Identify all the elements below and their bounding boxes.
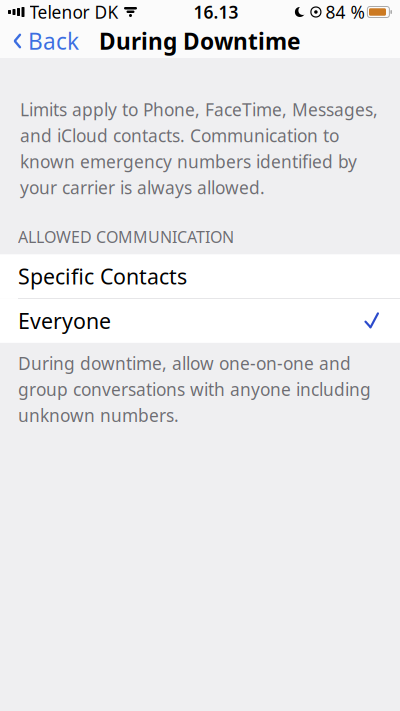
staticText: 84 % [325,0,364,23]
staticText: During Downtime [99,26,301,56]
staticText: Back [28,26,79,56]
staticText: 16.13 [193,0,238,23]
staticText: Specific Contacts [18,262,187,290]
staticText: Telenor DK [29,0,118,23]
button[interactable]: Back [0,20,79,62]
staticText: Everyone [18,307,111,335]
staticText: During downtime, allow one-on-one and gr… [18,352,371,427]
button[interactable]: Specific Contacts [0,254,400,298]
button[interactable]: Everyone [0,299,400,343]
staticText: ALLOWED COMMUNICATION [18,226,234,247]
staticText: Limits apply to Phone, FaceTime, Message… [20,98,378,199]
